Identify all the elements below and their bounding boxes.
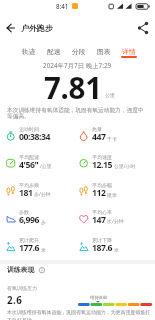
staticText: 次/分钟 (107, 218, 124, 225)
button[interactable]: 详情 (116, 45, 142, 58)
staticText: 步数 (19, 209, 29, 215)
staticText: 00:38:34 (19, 131, 51, 143)
button[interactable] (4, 235, 76, 261)
staticText: 户外跑步 (21, 23, 53, 33)
staticText: 累计下降 (92, 237, 112, 243)
staticText: 181 (19, 187, 33, 199)
staticText: 图表 (97, 47, 111, 56)
staticText: 分段 (72, 47, 86, 56)
staticText: 米 (41, 247, 46, 253)
staticText: 详情 (122, 47, 136, 56)
button[interactable] (4, 124, 76, 150)
button[interactable]: 分段 (66, 45, 92, 58)
staticText: 运动时间 (19, 126, 39, 132)
staticText: /公里 (40, 163, 52, 170)
button[interactable] (77, 208, 149, 234)
staticText: 训练表现 (7, 265, 35, 274)
button[interactable] (77, 124, 149, 150)
staticText: 147 (92, 214, 106, 226)
staticText: 平均心率 (92, 209, 112, 215)
staticText: 12.15 (92, 159, 113, 171)
staticText: 4'56" (19, 159, 39, 171)
staticText: 千卡 (107, 136, 117, 142)
staticText: 112 (92, 187, 106, 199)
staticText: 本次训练维持有氧体适能，巩固有氧运动能力，强度中 (7, 107, 144, 114)
button[interactable] (37, 265, 47, 275)
staticText: 轨迹 (22, 47, 36, 56)
button[interactable] (77, 235, 149, 261)
button[interactable]: 配速 (41, 45, 67, 58)
staticText: 步/分钟 (34, 191, 51, 198)
staticText: 447 (92, 131, 106, 143)
staticText: 有氧训练压力 (7, 285, 37, 291)
button[interactable] (135, 20, 151, 36)
staticText: 累计爬升 (19, 237, 39, 243)
staticText: 2.6 (7, 294, 23, 307)
button[interactable] (4, 180, 76, 206)
staticText: 热量 (92, 126, 102, 132)
staticText: 8:41 (56, 2, 69, 10)
staticText: 步 (41, 219, 46, 225)
staticText: 177.6 (19, 242, 40, 254)
staticText: 公里 (105, 92, 115, 98)
staticText: 187.6 (92, 242, 113, 254)
staticText: 平均步频 (19, 182, 39, 188)
staticText: 平均配速 (19, 154, 39, 160)
button[interactable] (4, 152, 76, 178)
staticText: 米 (114, 247, 119, 253)
staticText: 配速 (47, 47, 61, 56)
staticText: 厘米 (107, 192, 117, 198)
staticText: 7.81 (44, 67, 102, 107)
button[interactable] (77, 152, 149, 178)
staticText: 公里/小时 (114, 163, 136, 170)
staticText: 下良好基础。 (7, 317, 37, 320)
staticText: 2024年7月7日 晚上7:29 (43, 61, 112, 70)
staticText: 维持体能 (90, 295, 108, 300)
staticText: 平均速度 (92, 154, 112, 160)
staticText: 6,996 (19, 214, 40, 226)
staticText: 本次训练维持有氧体适能，巩固有氧运动能力，为更高强度锻炼打 (7, 309, 151, 315)
staticText: 等偏高。 (7, 113, 30, 120)
staticText: 平均步幅 (92, 182, 112, 188)
button[interactable] (4, 208, 76, 234)
button[interactable] (2, 20, 18, 36)
button[interactable] (77, 180, 149, 206)
button[interactable]: 轨迹 (16, 45, 42, 58)
button[interactable]: 图表 (91, 45, 117, 58)
